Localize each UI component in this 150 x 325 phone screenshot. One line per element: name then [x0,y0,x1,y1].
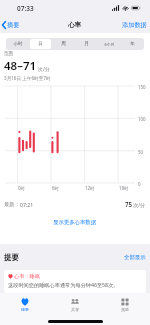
staticText: 次/分 [133,201,146,208]
button[interactable]: Sharing [50,293,100,314]
staticText: 浏览 [121,307,129,312]
staticText: 心率：睡眠 [14,273,40,280]
staticText: 月 [84,41,89,47]
staticText: 次/分 [38,66,50,73]
staticText: 范围 [4,51,14,57]
staticText: 添加数据 [122,21,147,29]
button[interactable]: 6个月 [99,39,120,49]
staticText: 6时 [52,185,59,191]
staticText: 最新： [4,201,20,208]
staticText: 48–71 [4,58,37,74]
button[interactable]: 日 [30,39,51,49]
staticText: 3月16日 上午6时至7时 [4,75,51,81]
staticText: 150 [138,84,146,90]
staticText: 12时 [85,185,95,191]
staticText: 0 [138,181,141,187]
staticText: 100 [138,116,146,122]
button[interactable]: 显示更多心率数据 [0,216,150,228]
staticText: 周 [61,41,66,47]
button[interactable]: 小时 [7,39,28,49]
staticText: 6个月 [104,42,115,47]
button[interactable]: Browse [100,293,150,314]
staticText: 75 [125,200,133,208]
staticText: 07:33 [17,4,34,13]
staticText: 提要 [4,253,19,262]
staticText: 这段时间您的睡眠心率通常为每分钟46至58次。 [8,281,119,288]
staticText: 18时 [119,185,129,191]
staticText: 07:21 [20,201,34,208]
button[interactable]: 添加数据 [118,18,150,32]
staticText: 心率 [68,21,82,29]
staticText: 显示更多心率数据 [53,219,97,226]
button[interactable]: 摘要 [0,18,24,32]
button[interactable]: 月 [76,39,97,49]
staticText: 摘要 [7,21,20,29]
staticText: 年 [130,41,135,47]
button[interactable]: 年 [122,39,143,49]
button[interactable]: Summary [0,293,50,314]
button[interactable]: 周 [53,39,74,49]
staticText: 小时 [13,41,23,47]
staticText: 全部显示 [124,254,146,261]
staticText: 日 [38,41,43,47]
button[interactable]: 全部显示 [124,254,146,261]
staticText: 共享 [71,307,79,312]
staticText: 0时 [18,185,25,191]
staticText: 摘要 [21,307,29,312]
staticText: 50 [138,149,144,155]
button[interactable]: 心率：睡眠 [4,270,146,293]
